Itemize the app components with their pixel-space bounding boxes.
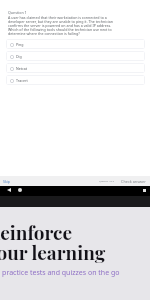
staticText: Question 1 [8,10,27,15]
staticText: Reinforce [0,219,73,244]
button[interactable]: Ping [6,39,145,49]
staticText: Free practice tests and quizzes on the g… [0,268,120,278]
button[interactable]: Home [18,188,22,192]
staticText: Dig [16,54,22,59]
button[interactable]: Skip [3,176,11,186]
button[interactable]: Dig [6,51,145,61]
staticText: Check answer [121,179,146,184]
staticText: your learning [0,239,106,264]
button[interactable]: Tracert [6,75,145,85]
staticText: Skip [3,179,11,184]
staticText: Question 1 of 5 [99,180,114,183]
button[interactable]: Netcat [6,63,145,73]
button[interactable]: Back [7,188,11,192]
staticText: Ping [16,42,24,47]
staticText: A user has claimed that their workstatio… [8,15,119,36]
staticText: Netcat [16,66,28,71]
button[interactable]: Check answer [121,176,146,186]
staticText: Tracert [16,78,28,83]
